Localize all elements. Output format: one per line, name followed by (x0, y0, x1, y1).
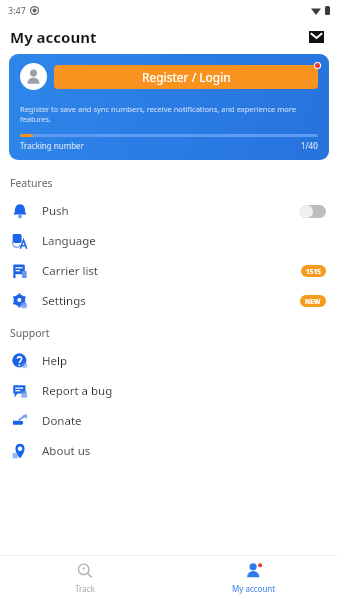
button[interactable]: Push (0, 196, 338, 226)
staticText: Tracking number (20, 140, 84, 151)
staticText: Language (42, 233, 96, 249)
staticText: Carrier list (42, 263, 99, 279)
button[interactable]: Messages (302, 23, 330, 51)
staticText: Donate (42, 413, 82, 429)
button[interactable]: Language (0, 226, 338, 256)
button[interactable]: About us (0, 436, 338, 466)
staticText: Support (10, 326, 50, 340)
staticText: My account (232, 583, 276, 594)
staticText: Push (42, 203, 69, 219)
button[interactable]: Track (0, 556, 169, 600)
staticText: Track (75, 583, 95, 594)
staticText: 1/40 (301, 140, 318, 151)
button[interactable]: Carrier list (0, 256, 338, 286)
button[interactable]: Donate (0, 406, 338, 436)
button[interactable]: My account (169, 556, 338, 600)
button[interactable]: Push toggle (300, 205, 326, 218)
staticText: 3:47 (8, 4, 26, 16)
button[interactable]: Register / Login (54, 65, 318, 89)
staticText: NEW (305, 297, 321, 306)
staticText: Register / Login (142, 69, 231, 85)
staticText: Register to save and sync numbers, recei… (20, 104, 318, 124)
button[interactable]: Report a bug (0, 376, 338, 406)
button[interactable]: Help (0, 346, 338, 376)
staticText: Features (10, 176, 53, 190)
button[interactable]: Settings (0, 286, 338, 316)
staticText: My account (10, 27, 97, 47)
staticText: About us (42, 443, 91, 459)
staticText: Settings (42, 293, 86, 309)
staticText: 1515 (306, 267, 321, 276)
staticText: Report a bug (42, 383, 113, 399)
button[interactable]: Register / Login (9, 54, 329, 160)
staticText: Help (42, 353, 68, 369)
